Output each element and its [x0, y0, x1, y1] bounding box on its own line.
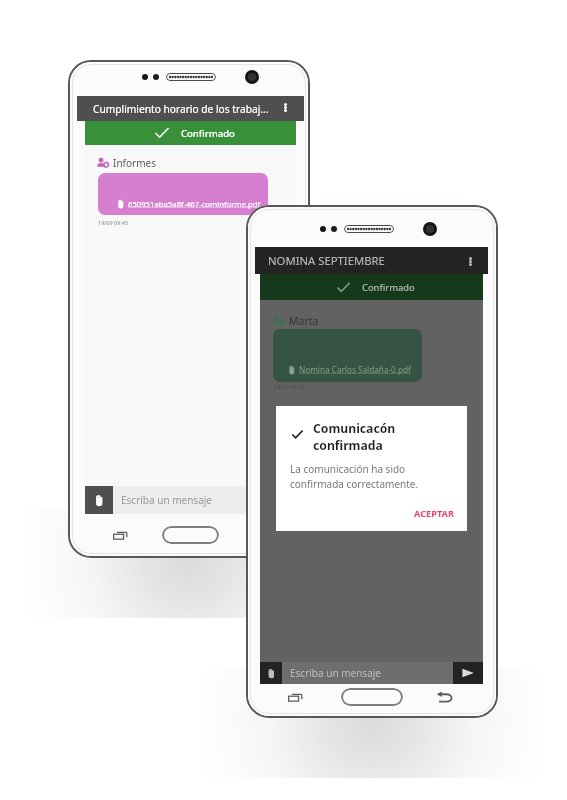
staticText: Informes — [113, 156, 156, 169]
staticText: Escriba un mensaje — [290, 666, 381, 680]
button[interactable]: Recientes — [113, 529, 129, 542]
button[interactable]: 650951aba5a8f-467-cominforme.pdf — [98, 173, 268, 215]
button[interactable]: Más opciones — [276, 98, 294, 116]
button[interactable]: Atrás — [436, 691, 453, 704]
button[interactable]: Recientes — [288, 691, 304, 704]
button[interactable]: Confirmado — [85, 121, 296, 145]
button[interactable]: Atrás — [249, 529, 266, 542]
button[interactable]: Inicio — [341, 688, 403, 706]
staticText: La comunicación ha sido confirmada corre… — [290, 462, 419, 491]
button[interactable]: Confirmado — [260, 274, 483, 300]
staticText: Confirmado — [362, 281, 415, 294]
button[interactable]: Nomina Carlos Saldaña-0.pdf — [273, 329, 422, 382]
button[interactable]: Adjuntar archivo — [85, 486, 113, 514]
button[interactable]: Adjuntar archivo — [260, 662, 282, 684]
staticText: Cumplimiento horario de los trabaj... — [93, 102, 269, 116]
button[interactable]: Inicio — [162, 526, 219, 544]
button[interactable]: Más opciones — [461, 252, 479, 270]
button[interactable]: Enviar — [453, 662, 483, 684]
staticText: 19/09 09:45 — [98, 219, 129, 226]
staticText: 05/10 10:26 — [274, 383, 305, 390]
staticText: Comunicacón confirmada — [313, 420, 396, 454]
staticText: ACEPTAR — [414, 507, 454, 520]
staticText: 650951aba5a8f-467-cominforme.pdf — [128, 199, 261, 209]
staticText: Marta — [289, 314, 319, 327]
staticText: NOMINA SEPTIEMBRE — [268, 253, 385, 268]
staticText: Nomina Carlos Saldaña-0.pdf — [299, 364, 411, 375]
button[interactable]: ACEPTAR — [406, 501, 462, 526]
staticText: Escriba un mensaje — [121, 493, 212, 507]
staticText: Confirmado — [181, 127, 235, 140]
